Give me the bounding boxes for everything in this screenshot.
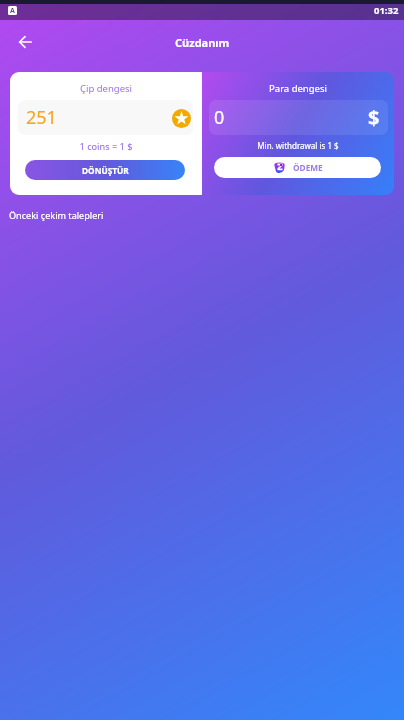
staticText: Para dengesi [202,82,394,95]
staticText: DÖNÜŞTÜR [82,165,129,176]
button[interactable]: DÖNÜŞTÜR [25,160,185,180]
button[interactable]: Para dengesi [202,72,394,195]
button[interactable]: Back [18,35,32,49]
button[interactable]: Çip dengesi [10,72,202,195]
staticText: Çip dengesi [10,82,202,95]
staticText: 0 [214,105,225,130]
staticText: 251 [26,105,57,130]
staticText: ÖDEME [293,162,323,173]
staticText: 1 coins = 1 $ [10,140,202,153]
staticText: 01:32 [374,4,399,17]
staticText: Cüzdanım [175,35,230,50]
staticText: A [10,6,15,15]
staticText: $ [368,104,380,131]
staticText: Min. withdrawal is 1 $ [202,140,394,151]
button[interactable]: ÖDEME [214,157,381,178]
staticText: Önceki çekim talepleri [9,209,104,221]
